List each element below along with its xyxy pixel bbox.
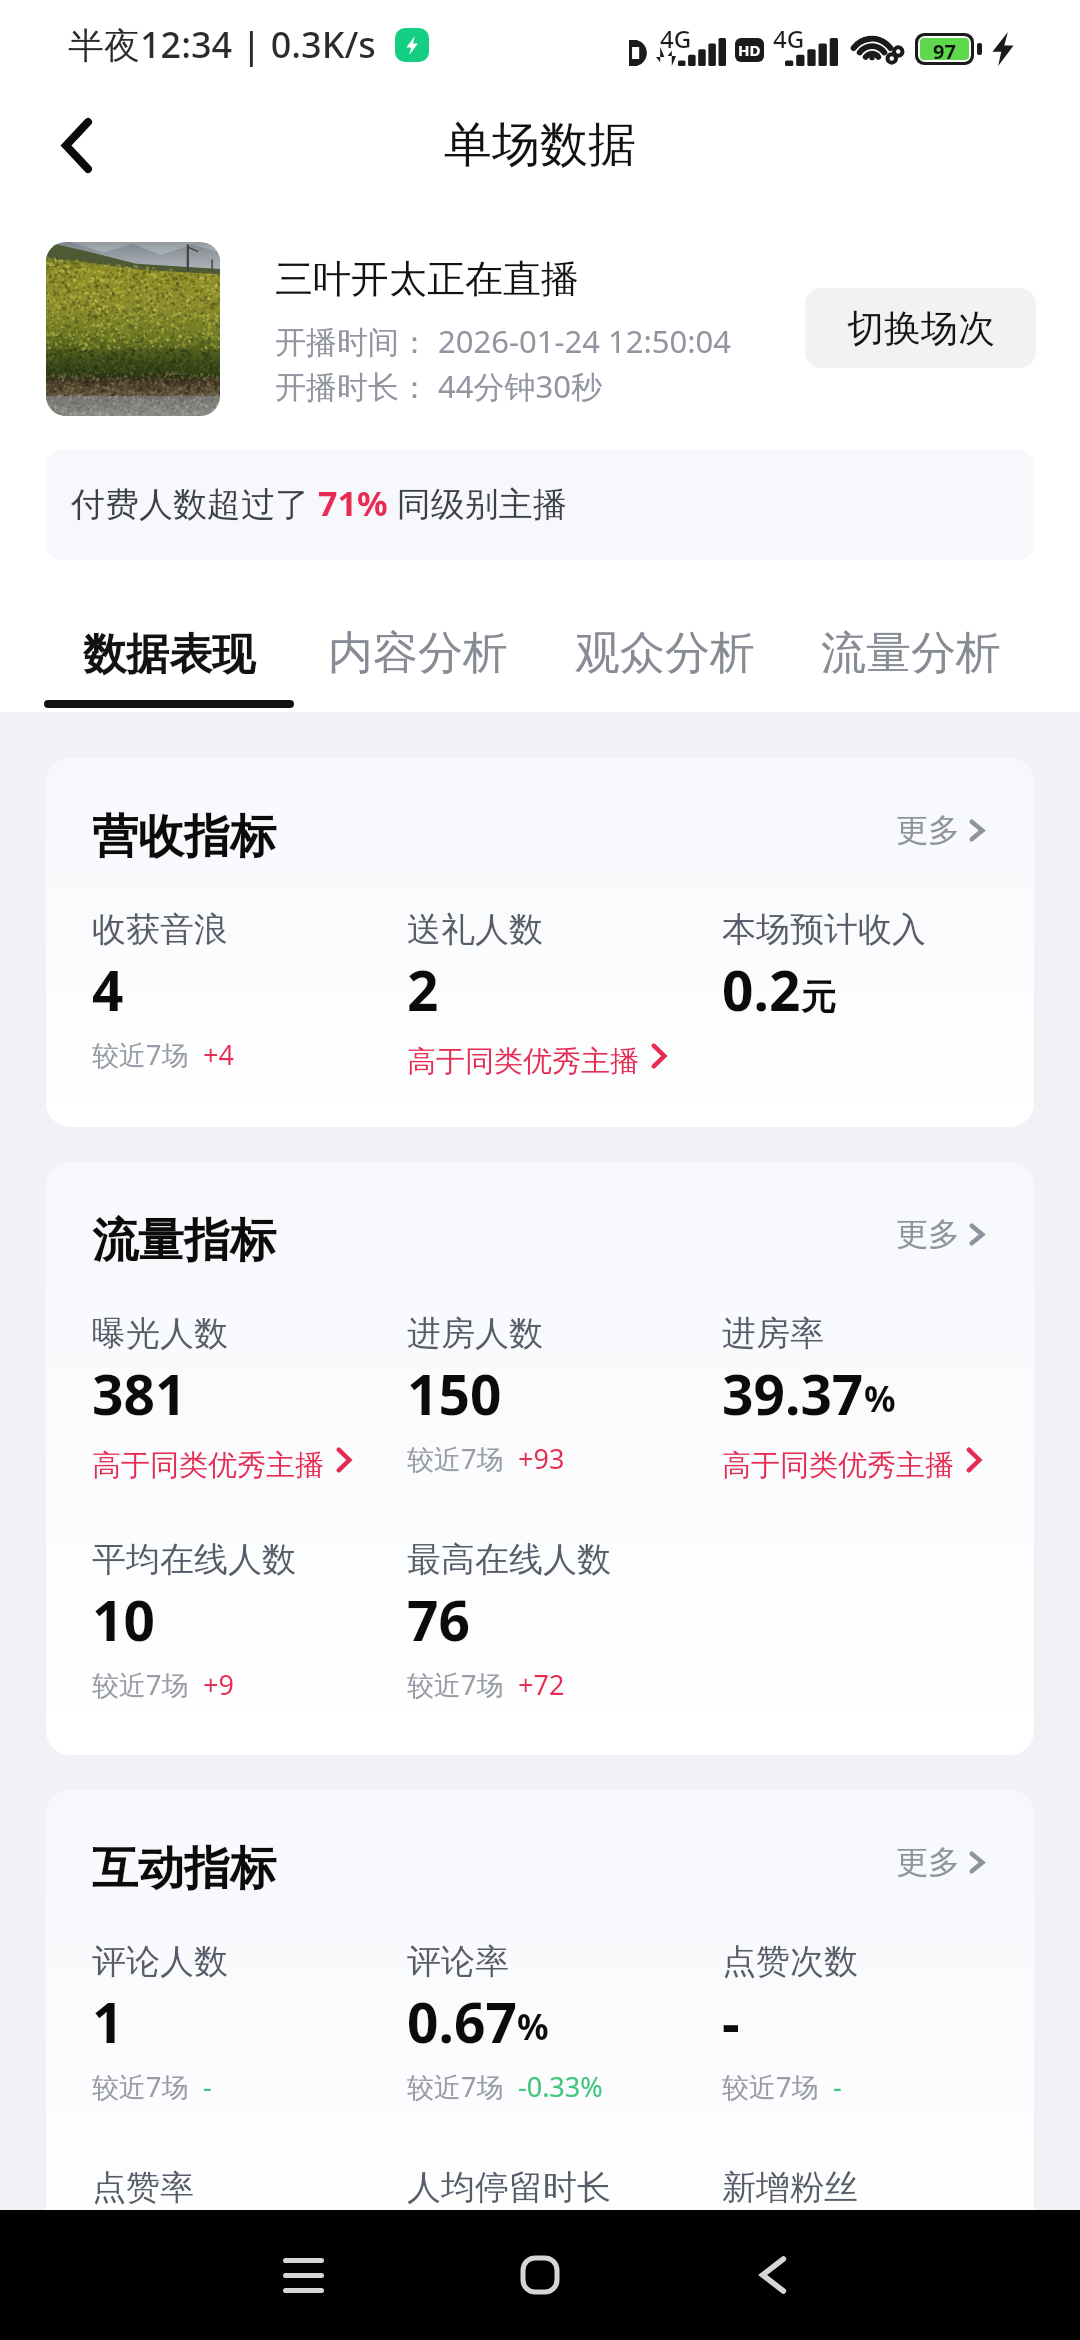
button[interactable]: Home bbox=[492, 2210, 588, 2340]
staticText: 元 bbox=[801, 975, 836, 1019]
staticText: +72 bbox=[518, 1666, 565, 1703]
staticText: 曝光人数 bbox=[92, 1312, 228, 1355]
staticText: 收获音浪 bbox=[92, 908, 228, 951]
staticText: 39.37 bbox=[722, 1356, 864, 1431]
staticText: 4 bbox=[92, 952, 124, 1027]
staticText: 进房人数 bbox=[407, 1312, 543, 1355]
staticText: 进房率 bbox=[722, 1312, 824, 1355]
staticText: 评论人数 bbox=[92, 1940, 228, 1983]
button[interactable]: Back bbox=[22, 90, 132, 200]
button[interactable]: 更多 bbox=[896, 1214, 985, 1254]
staticText: +9 bbox=[203, 1666, 234, 1703]
staticText: 1 bbox=[92, 1984, 124, 2059]
button[interactable]: 更多 bbox=[896, 1842, 985, 1882]
staticText: 内容分析 bbox=[328, 625, 508, 682]
staticText: 97 bbox=[933, 38, 956, 60]
button[interactable]: 切换场次 bbox=[805, 288, 1036, 368]
staticText: 半夜12:34 | 0.3K/s bbox=[68, 20, 376, 69]
staticText: 流量指标 bbox=[92, 1212, 276, 1270]
staticText: 点赞率 bbox=[92, 2166, 194, 2209]
staticText: 新增粉丝 bbox=[722, 2166, 858, 2209]
staticText: 较近7场 bbox=[92, 1666, 189, 1703]
staticText: 381 bbox=[92, 1356, 187, 1431]
button[interactable]: 流量分析 bbox=[788, 600, 1033, 712]
staticText: 0.67 bbox=[407, 1984, 517, 2059]
staticText: 最高在线人数 bbox=[407, 1538, 611, 1581]
staticText: HD bbox=[738, 40, 761, 60]
staticText: 10 bbox=[92, 1582, 155, 1657]
staticText: 人均停留时长 bbox=[407, 2166, 611, 2209]
staticText: 76 bbox=[407, 1582, 470, 1657]
staticText: 更多 bbox=[896, 1214, 960, 1254]
staticText: 4G bbox=[660, 22, 692, 55]
staticText: 高于同类优秀主播 bbox=[407, 1043, 639, 1080]
staticText: % bbox=[517, 2003, 549, 2051]
staticText: -0.33% bbox=[518, 2068, 603, 2105]
staticText: 较近7场 bbox=[92, 2068, 189, 2105]
staticText: 评论率 bbox=[407, 1940, 509, 1983]
staticText: 较近7场 bbox=[407, 1440, 504, 1477]
staticText: 三叶开太正在直播 bbox=[275, 255, 579, 303]
staticText: 切换场次 bbox=[847, 305, 995, 352]
staticText: 71% bbox=[318, 480, 388, 526]
staticText: 营收指标 bbox=[92, 808, 276, 866]
staticText: 送礼人数 bbox=[407, 908, 543, 951]
staticText: 较近7场 bbox=[92, 1036, 189, 1073]
staticText: 2 bbox=[407, 952, 439, 1027]
button[interactable]: 观众分析 bbox=[541, 600, 789, 712]
button[interactable]: 数据表现 bbox=[49, 600, 288, 712]
staticText: 开播时间： 2026-01-24 12:50:04 bbox=[275, 320, 731, 362]
staticText: +4 bbox=[203, 1036, 234, 1073]
staticText: 互动指标 bbox=[92, 1840, 276, 1898]
staticText: - bbox=[203, 2068, 212, 2105]
staticText: 较近7场 bbox=[407, 2068, 504, 2105]
staticText: 点赞次数 bbox=[722, 1940, 858, 1983]
button[interactable]: Recent apps bbox=[255, 2210, 351, 2340]
button[interactable]: 高于同类优秀主播 bbox=[407, 1043, 667, 1080]
staticText: 本场预计收入 bbox=[722, 908, 926, 951]
staticText: 高于同类优秀主播 bbox=[92, 1447, 324, 1484]
staticText: 高于同类优秀主播 bbox=[722, 1447, 954, 1484]
staticText: 开播时长： 44分钟30秒 bbox=[275, 365, 602, 407]
staticText: 较近7场 bbox=[407, 1666, 504, 1703]
staticText: 较近7场 bbox=[722, 2068, 819, 2105]
staticText: 4G bbox=[773, 22, 805, 55]
staticText: 同级别主播 bbox=[388, 480, 567, 526]
staticText: 单场数据 bbox=[444, 115, 636, 175]
staticText: - bbox=[833, 2068, 842, 2105]
staticText: 付费人数超过了 bbox=[71, 480, 318, 526]
staticText: % bbox=[864, 1375, 896, 1423]
button[interactable]: 高于同类优秀主播 bbox=[92, 1447, 352, 1484]
button[interactable]: 更多 bbox=[896, 810, 985, 850]
staticText: - bbox=[722, 1984, 740, 2059]
staticText: +93 bbox=[518, 1440, 565, 1477]
staticText: 更多 bbox=[896, 1842, 960, 1882]
staticText: 150 bbox=[407, 1356, 502, 1431]
staticText: 平均在线人数 bbox=[92, 1538, 296, 1581]
staticText: 观众分析 bbox=[575, 625, 755, 682]
staticText: 流量分析 bbox=[821, 625, 1001, 682]
staticText: 数据表现 bbox=[83, 628, 255, 682]
button[interactable]: Streamer avatar bbox=[46, 242, 220, 416]
staticText: 0.2 bbox=[722, 952, 801, 1027]
button[interactable]: 高于同类优秀主播 bbox=[722, 1447, 982, 1484]
button[interactable]: 内容分析 bbox=[293, 600, 542, 712]
staticText: 更多 bbox=[896, 810, 960, 850]
button[interactable]: Back bbox=[725, 2210, 821, 2340]
